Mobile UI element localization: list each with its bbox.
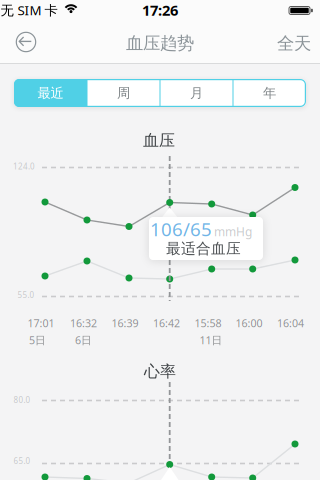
button[interactable]: 月: [160, 79, 233, 107]
button[interactable]: 周: [87, 79, 160, 107]
button[interactable]: Back: [11, 27, 41, 57]
staticText: 65.0: [13, 456, 30, 466]
staticText: 最近: [37, 85, 63, 101]
staticText: 17:01: [27, 316, 54, 330]
button[interactable]: 年: [233, 79, 306, 107]
staticText: 55.0: [17, 290, 34, 300]
staticText: 6日: [75, 333, 92, 347]
staticText: 16:00: [235, 316, 262, 330]
staticText: 心率: [144, 361, 176, 381]
staticText: 106/65: [150, 217, 212, 241]
staticText: 年: [263, 85, 276, 101]
button[interactable]: 全天: [277, 33, 311, 54]
staticText: 17:26: [142, 0, 178, 20]
staticText: 16:32: [70, 316, 97, 330]
staticText: 无 SIM 卡: [0, 1, 57, 19]
staticText: 16:42: [153, 316, 180, 330]
staticText: 16:04: [277, 316, 304, 330]
staticText: 周: [117, 85, 130, 101]
staticText: 全天: [277, 33, 311, 54]
staticText: 11日: [199, 333, 222, 347]
staticText: 5日: [29, 333, 46, 347]
staticText: 月: [190, 85, 203, 101]
staticText: 最适合血压: [166, 239, 241, 257]
staticText: mmHg: [214, 223, 252, 239]
button[interactable]: 最近: [14, 79, 87, 107]
staticText: 16:39: [111, 316, 138, 330]
staticText: 15:58: [194, 316, 221, 330]
staticText: 血压趋势: [126, 33, 194, 54]
staticText: 124.0: [13, 161, 35, 172]
staticText: 血压: [143, 130, 175, 150]
staticText: 80.0: [13, 395, 30, 405]
